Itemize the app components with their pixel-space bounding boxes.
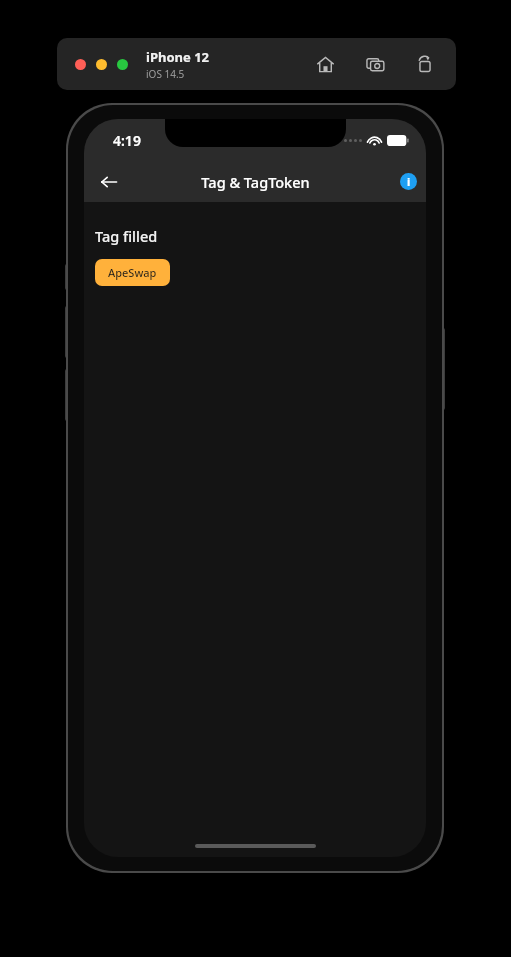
button[interactable]: Close	[75, 59, 86, 70]
staticText: 4:19	[113, 131, 141, 150]
button[interactable]: Back	[92, 165, 126, 199]
staticText: iPhone 12	[146, 48, 209, 66]
button[interactable]: Screenshot	[362, 51, 388, 77]
button[interactable]: Info	[400, 173, 417, 190]
button[interactable]: Minimize	[96, 59, 107, 70]
button[interactable]: Home	[312, 51, 338, 77]
staticText: Tag & TagToken	[201, 172, 310, 192]
staticText: Tag filled	[95, 226, 158, 246]
staticText: iOS 14.5	[146, 67, 185, 81]
button[interactable]: ApeSwap	[95, 259, 170, 286]
staticText: ApeSwap	[108, 265, 157, 280]
button[interactable]: Rotate	[412, 51, 438, 77]
staticText: i	[407, 174, 411, 189]
button[interactable]: Zoom	[117, 59, 128, 70]
